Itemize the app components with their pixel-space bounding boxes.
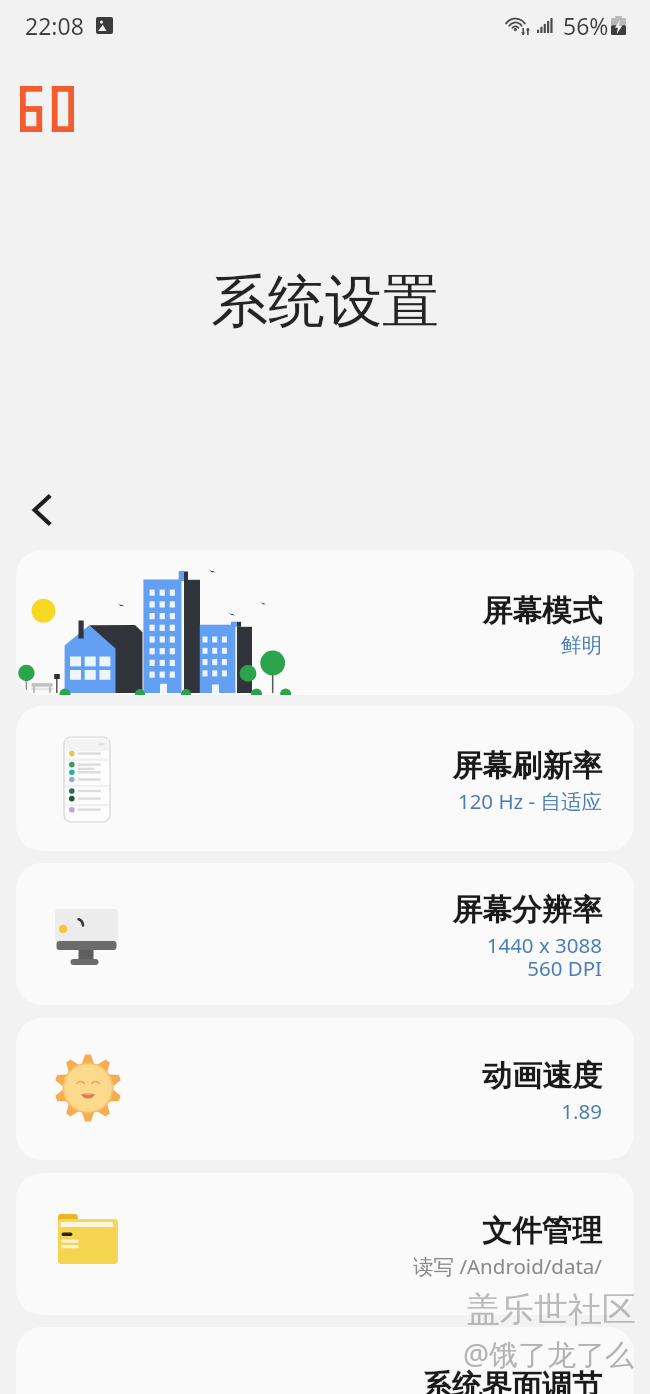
staticText: 1440 x 3088 560 DPI (486, 931, 602, 982)
staticText: 盖乐世社区 (466, 1288, 636, 1331)
staticText: 56% (563, 10, 609, 41)
staticText: 1.89 (561, 1097, 602, 1125)
button[interactable]: 屏幕模式 (16, 550, 634, 695)
staticText: 动画速度 (482, 1057, 602, 1095)
staticText: 系统界面调节 (422, 1367, 602, 1394)
button[interactable]: 屏幕分辨率 (16, 863, 634, 1005)
staticText: @饿了龙了么 (463, 1334, 635, 1374)
staticText: 系统设置 (0, 266, 650, 338)
staticText: 屏幕分辨率 (452, 891, 602, 929)
staticText: 屏幕刷新率 (452, 747, 602, 785)
staticText: 屏幕模式 (482, 592, 602, 630)
staticText: 22:08 (25, 10, 84, 41)
button[interactable]: 系统界面调节 (16, 1327, 634, 1394)
button[interactable]: 文件管理 (16, 1173, 634, 1315)
staticText: 120 Hz - 自适应 (457, 787, 602, 815)
button[interactable]: 动画速度 (16, 1018, 634, 1160)
button[interactable]: 屏幕刷新率 (16, 706, 634, 851)
staticText: 文件管理 (482, 1212, 602, 1250)
staticText: 读写 /Android/data/ (413, 1252, 602, 1280)
staticText: 鲜明 (561, 632, 602, 658)
button[interactable]: Back (18, 484, 70, 536)
